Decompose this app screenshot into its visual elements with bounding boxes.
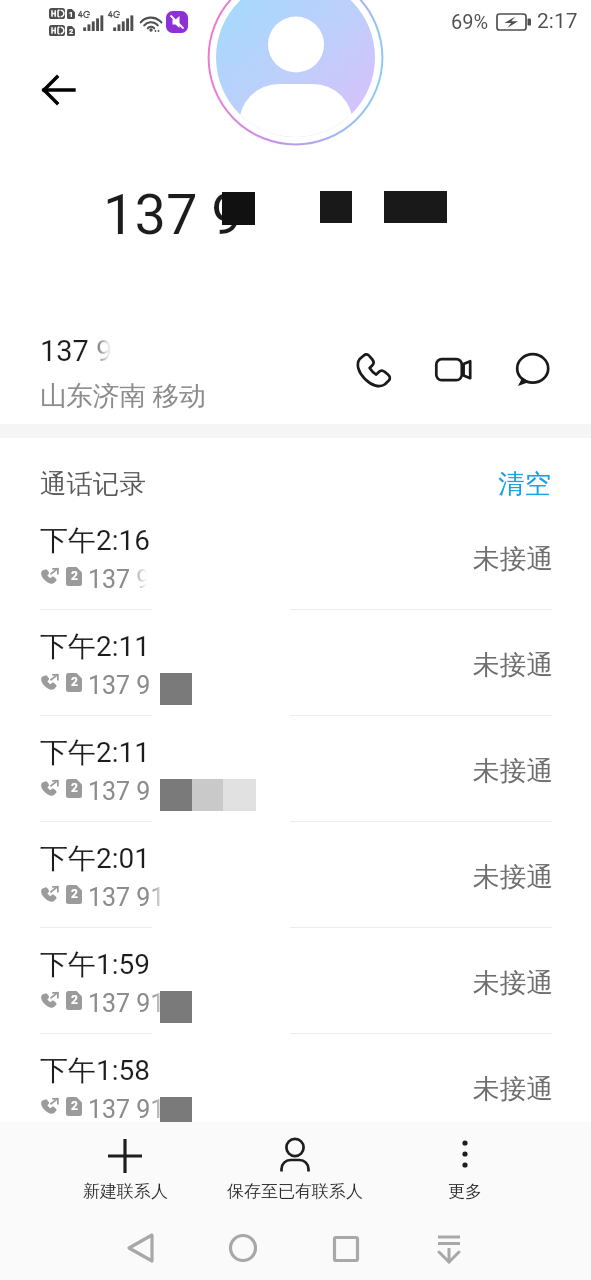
- staticText: 下午2:01: [40, 841, 150, 876]
- button[interactable]: 下午2:01: [0, 818, 591, 924]
- button[interactable]: 下午1:59: [0, 924, 591, 1030]
- staticText: 2: [71, 887, 78, 901]
- staticText: 137 9: [103, 182, 243, 248]
- staticText: 未接通: [473, 754, 554, 788]
- button[interactable]: 保存至已有联系人: [225, 1130, 365, 1210]
- button[interactable]: Hide keyboard: [418, 1229, 480, 1279]
- staticText: 2:17: [537, 9, 578, 34]
- button[interactable]: Back: [110, 1225, 172, 1271]
- staticText: 更多: [448, 1181, 482, 1202]
- staticText: 2: [71, 1099, 78, 1113]
- staticText: 137 9: [88, 671, 151, 700]
- staticText: 下午1:58: [40, 1053, 150, 1088]
- staticText: 1: [69, 10, 74, 19]
- button[interactable]: 下午2:16: [0, 500, 591, 606]
- button[interactable]: 更多: [410, 1130, 520, 1210]
- staticText: 2: [71, 993, 78, 1007]
- staticText: 保存至已有联系人: [227, 1181, 363, 1202]
- button[interactable]: Video call: [425, 348, 481, 390]
- button[interactable]: Home: [212, 1225, 274, 1271]
- staticText: 清空: [498, 467, 551, 500]
- staticText: 69%: [451, 10, 489, 33]
- staticText: 2: [71, 781, 78, 795]
- staticText: 137 9: [88, 777, 151, 806]
- staticText: 下午2:11: [40, 629, 150, 664]
- button[interactable]: 下午1:58: [0, 1030, 591, 1136]
- staticText: 未接通: [473, 542, 554, 576]
- staticText: 137 9: [40, 334, 113, 368]
- staticText: 未接通: [473, 1072, 554, 1106]
- staticText: 137 91: [88, 883, 165, 912]
- staticText: 新建联系人: [83, 1181, 168, 1202]
- button[interactable]: 新建联系人: [60, 1130, 190, 1210]
- staticText: 2: [69, 27, 74, 36]
- staticText: 137 91: [88, 989, 165, 1018]
- staticText: 未接通: [473, 860, 554, 894]
- button[interactable]: 清空: [498, 467, 551, 500]
- button[interactable]: 下午2:11: [0, 712, 591, 818]
- staticText: 山东济南 移动: [40, 379, 206, 412]
- staticText: 未接通: [473, 648, 554, 682]
- staticText: 137 9: [88, 565, 151, 594]
- button[interactable]: Call: [353, 348, 395, 390]
- button[interactable]: 下午2:11: [0, 606, 591, 712]
- staticText: 137 91: [88, 1095, 165, 1124]
- button[interactable]: Message: [508, 344, 560, 396]
- button[interactable]: Recents: [315, 1226, 377, 1272]
- staticText: 2: [71, 569, 78, 583]
- staticText: 下午2:11: [40, 735, 150, 770]
- staticText: 下午2:16: [40, 523, 150, 558]
- staticText: 2: [71, 675, 78, 689]
- staticText: 通话记录: [40, 467, 146, 500]
- button[interactable]: Back: [28, 58, 92, 122]
- staticText: 下午1:59: [40, 947, 150, 982]
- staticText: 未接通: [473, 966, 554, 1000]
